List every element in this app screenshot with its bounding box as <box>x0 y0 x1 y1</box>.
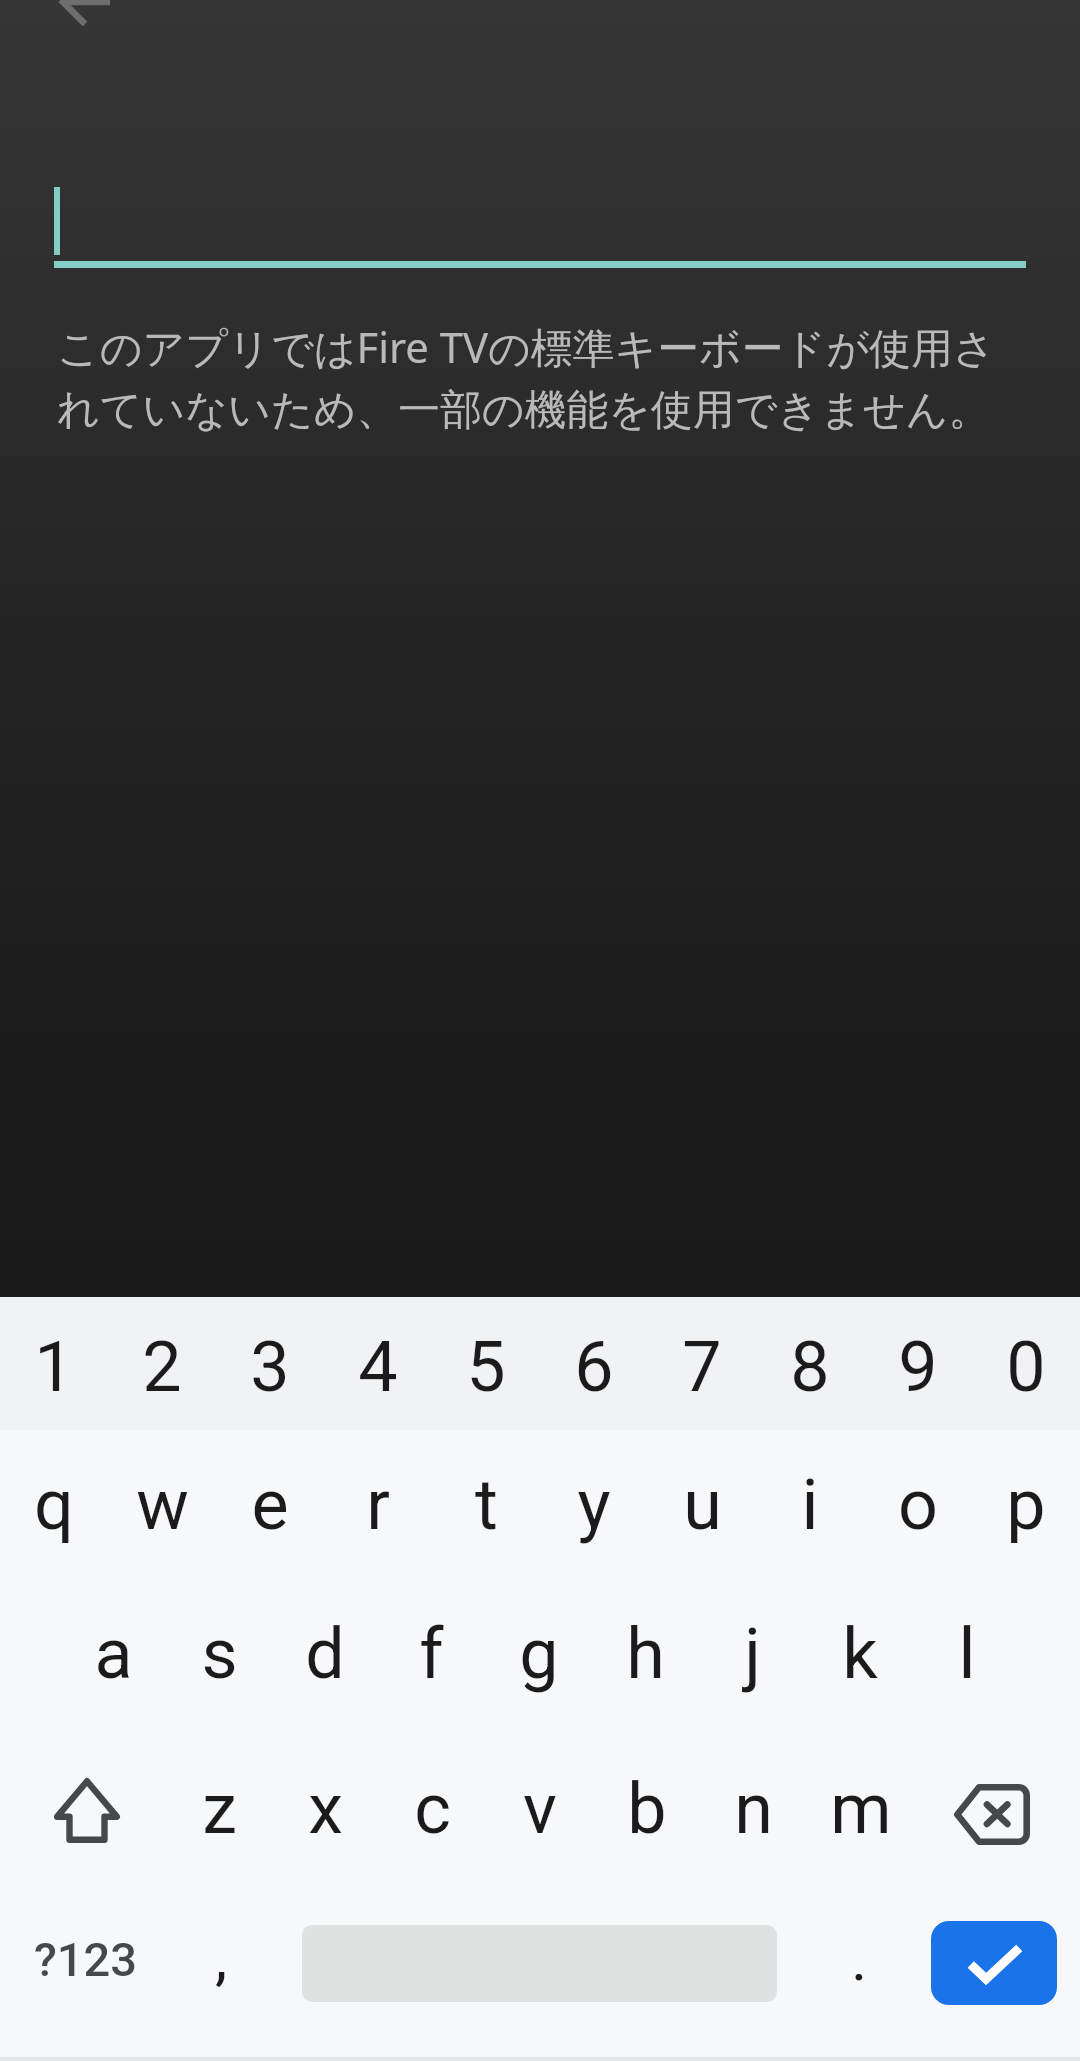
staticText: m <box>830 1768 892 1850</box>
staticText: 5 <box>466 1326 506 1408</box>
button[interactable]: . <box>777 1887 931 2038</box>
button[interactable]: h <box>592 1585 699 1736</box>
button[interactable]: r <box>324 1434 432 1585</box>
staticText: 0 <box>1006 1326 1046 1408</box>
button[interactable]: b <box>593 1736 700 1887</box>
staticText: a <box>94 1613 133 1695</box>
button[interactable]: n <box>700 1736 807 1887</box>
staticText: v <box>523 1768 557 1850</box>
staticText: 2 <box>142 1326 182 1408</box>
button[interactable]: 8 <box>756 1297 864 1434</box>
button[interactable]: 2 <box>108 1297 216 1434</box>
button[interactable]: 7 <box>648 1297 756 1434</box>
button[interactable]: l <box>913 1585 1020 1736</box>
button[interactable]: Back <box>0 0 120 62</box>
staticText: j <box>744 1613 761 1695</box>
staticText: u <box>683 1464 722 1546</box>
button[interactable]: a <box>60 1585 166 1736</box>
staticText: このアプリではFire TVの標準キーボードが使用されていないため、一部の機能を… <box>57 318 1007 437</box>
button[interactable]: f <box>378 1585 485 1736</box>
staticText: h <box>626 1613 665 1695</box>
button[interactable]: u <box>648 1434 756 1585</box>
button[interactable]: v <box>486 1736 593 1887</box>
staticText: r <box>366 1464 390 1546</box>
button[interactable]: Backspace <box>907 1736 1080 1887</box>
staticText: 6 <box>574 1326 614 1408</box>
button[interactable]: 1 <box>0 1297 108 1434</box>
button[interactable]: 0 <box>972 1297 1080 1434</box>
button[interactable]: d <box>272 1585 378 1736</box>
button[interactable]: j <box>699 1585 806 1736</box>
staticText: z <box>202 1768 237 1850</box>
staticText: 9 <box>898 1326 938 1408</box>
staticText: p <box>1006 1464 1046 1546</box>
staticText: y <box>577 1464 611 1546</box>
staticText: 7 <box>682 1326 722 1408</box>
staticText: l <box>958 1613 976 1695</box>
staticText: . <box>851 1922 868 1995</box>
staticText: d <box>305 1613 345 1695</box>
staticText: 3 <box>250 1326 290 1408</box>
button[interactable]: Enter <box>931 1921 1057 2005</box>
button[interactable]: 4 <box>324 1297 432 1434</box>
button[interactable]: p <box>972 1434 1080 1585</box>
button[interactable]: i <box>756 1434 864 1585</box>
button[interactable]: q <box>0 1434 108 1585</box>
button[interactable]: y <box>540 1434 648 1585</box>
button[interactable]: x <box>272 1736 379 1887</box>
staticText: ?123 <box>34 1932 137 1987</box>
staticText: t <box>475 1464 498 1546</box>
staticText: n <box>734 1768 773 1850</box>
button[interactable]: Shift <box>0 1736 173 1887</box>
staticText: q <box>34 1464 74 1546</box>
staticText: 1 <box>34 1326 74 1408</box>
button[interactable]: m <box>807 1736 914 1887</box>
staticText: o <box>898 1464 938 1546</box>
staticText: x <box>308 1768 343 1850</box>
staticText: 8 <box>790 1326 830 1408</box>
button[interactable]: , <box>170 1887 302 2038</box>
button[interactable]: 5 <box>432 1297 540 1434</box>
button[interactable]: 9 <box>864 1297 972 1434</box>
button[interactable]: ?123 <box>0 1887 170 2038</box>
button[interactable]: g <box>485 1585 592 1736</box>
button[interactable]: c <box>379 1736 486 1887</box>
staticText: e <box>251 1464 289 1546</box>
staticText: i <box>801 1464 819 1546</box>
staticText: f <box>419 1613 444 1695</box>
button[interactable]: w <box>108 1434 216 1585</box>
staticText: 4 <box>358 1326 398 1408</box>
button[interactable]: k <box>806 1585 913 1736</box>
button[interactable]: o <box>864 1434 972 1585</box>
staticText: g <box>519 1613 559 1695</box>
staticText: , <box>215 1921 228 1994</box>
button[interactable]: 3 <box>216 1297 324 1434</box>
staticText: k <box>842 1613 878 1695</box>
staticText: c <box>414 1768 451 1850</box>
staticText: b <box>627 1768 667 1850</box>
staticText: w <box>136 1464 189 1546</box>
button[interactable]: t <box>432 1434 540 1585</box>
button[interactable]: z <box>166 1736 272 1887</box>
button[interactable]: e <box>216 1434 324 1585</box>
staticText: s <box>201 1613 238 1695</box>
button[interactable]: s <box>166 1585 272 1736</box>
button[interactable]: 6 <box>540 1297 648 1434</box>
